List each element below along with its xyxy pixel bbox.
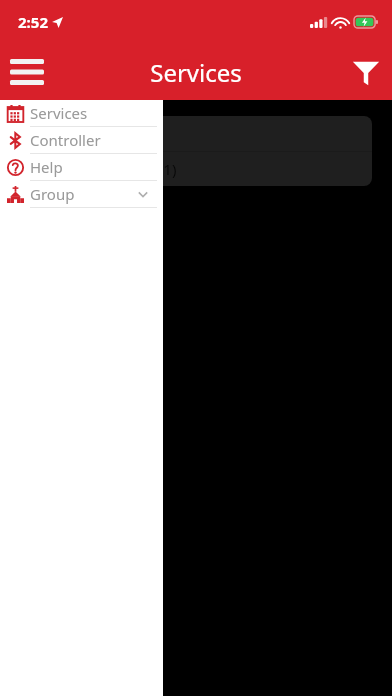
- button[interactable]: Bible Study (12/03/21): [8, 152, 372, 186]
- staticText: Worship (12/01/21): [22, 124, 157, 144]
- button[interactable]: Controller: [0, 127, 163, 153]
- staticText: Bible Study (12/03/21): [22, 159, 177, 179]
- staticText: Services: [30, 103, 88, 123]
- staticText: Controller: [30, 130, 101, 150]
- staticText: Group: [30, 184, 75, 204]
- staticText: Help: [30, 157, 63, 177]
- staticText: 2:52: [18, 12, 48, 32]
- button[interactable]: [0, 0, 392, 696]
- button[interactable]: Help: [0, 154, 163, 180]
- button[interactable]: Worship (12/01/21): [8, 116, 372, 151]
- button[interactable]: Filter: [340, 46, 392, 98]
- button[interactable]: Open navigation menu: [0, 45, 54, 99]
- staticText: Services: [150, 56, 242, 89]
- button[interactable]: Group: [0, 181, 163, 207]
- button[interactable]: Services: [0, 100, 163, 126]
